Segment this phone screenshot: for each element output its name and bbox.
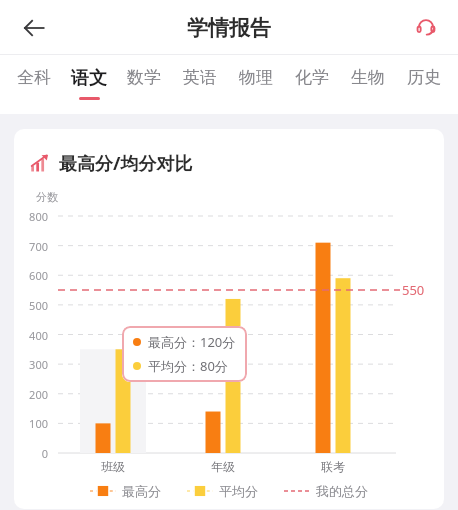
staticText: 400 <box>14 328 48 343</box>
button[interactable]: Customer service <box>406 8 446 48</box>
staticText: 全科 <box>17 67 51 88</box>
staticText: 英语 <box>183 67 217 88</box>
staticText: 生物 <box>351 67 385 88</box>
staticText: 物理 <box>239 67 273 88</box>
staticText: 班级 <box>91 459 135 474</box>
button[interactable]: 我的总分 <box>284 483 368 499</box>
staticText: 最高分 <box>122 483 161 499</box>
staticText: 800 <box>14 209 48 224</box>
button[interactable]: 平均分 <box>187 483 258 499</box>
staticText: 0 <box>14 446 48 461</box>
staticText: 学情报告 <box>187 15 271 41</box>
staticText: 700 <box>14 239 48 254</box>
staticText: 化学 <box>295 67 329 88</box>
button[interactable]: 历史 <box>396 55 452 114</box>
staticText: 平均分： <box>148 358 200 374</box>
staticText: 分数 <box>36 190 58 204</box>
button[interactable]: 生物 <box>340 55 396 114</box>
button[interactable]: 语文 <box>61 55 116 114</box>
staticText: 数学 <box>127 67 161 88</box>
staticText: 年级 <box>201 459 245 474</box>
staticText: 历史 <box>407 67 441 88</box>
staticText: 联考 <box>311 459 355 474</box>
staticText: 500 <box>14 298 48 313</box>
staticText: 语文 <box>71 67 107 90</box>
staticText: 600 <box>14 268 48 283</box>
button[interactable]: 化学 <box>284 55 340 114</box>
staticText: 550 <box>402 281 425 299</box>
button[interactable]: 物理 <box>228 55 284 114</box>
staticText: 我的总分 <box>316 483 368 499</box>
staticText: 300 <box>14 357 48 372</box>
button[interactable]: 英语 <box>172 55 228 114</box>
staticText: 120分 <box>200 333 236 351</box>
staticText: 100 <box>14 416 48 431</box>
button[interactable]: Back <box>12 6 56 50</box>
button[interactable]: 数学 <box>116 55 172 114</box>
staticText: 平均分 <box>219 483 258 499</box>
button[interactable]: 最高分 <box>90 483 161 499</box>
staticText: 200 <box>14 387 48 402</box>
button[interactable]: 全科 <box>6 55 61 114</box>
staticText: 最高分/均分对比 <box>59 151 193 176</box>
staticText: 最高分： <box>148 334 200 350</box>
staticText: 80分 <box>200 357 228 375</box>
